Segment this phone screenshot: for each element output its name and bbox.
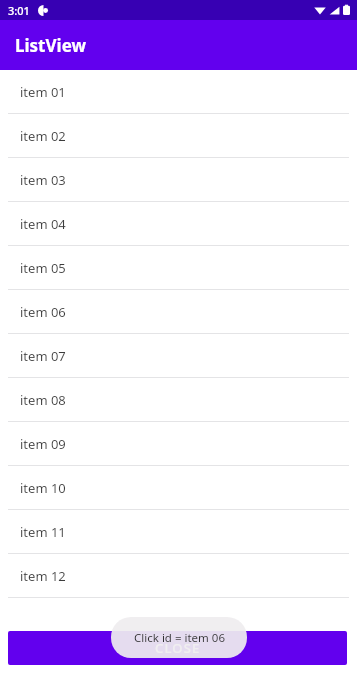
button[interactable]: item 05	[0, 246, 357, 290]
button[interactable]: item 09	[0, 422, 357, 466]
staticText: CLOSE	[155, 639, 201, 657]
staticText: item 12	[20, 567, 66, 585]
button[interactable]: item 08	[0, 378, 357, 422]
button[interactable]: item 11	[0, 510, 357, 554]
staticText: item 01	[20, 83, 66, 101]
staticText: item 04	[20, 215, 66, 233]
button[interactable]: item 10	[0, 466, 357, 510]
staticText: item 05	[20, 259, 66, 277]
staticText: 3:01	[8, 3, 30, 18]
staticText: ListView	[15, 34, 86, 57]
button[interactable]: item 06	[0, 290, 357, 334]
staticText: item 02	[20, 127, 66, 145]
button[interactable]: item 12	[0, 554, 357, 598]
staticText: item 10	[20, 479, 66, 497]
staticText: item 08	[20, 391, 66, 409]
staticText: Click id = item 06	[134, 630, 225, 646]
button[interactable]: item 03	[0, 158, 357, 202]
button[interactable]: item 01	[0, 70, 357, 114]
button[interactable]: item 04	[0, 202, 357, 246]
button[interactable]: item 02	[0, 114, 357, 158]
staticText: item 07	[20, 347, 66, 365]
button[interactable]: item 07	[0, 334, 357, 378]
staticText: item 09	[20, 435, 66, 453]
staticText: item 11	[20, 523, 66, 541]
button[interactable]: CLOSE	[8, 631, 347, 665]
staticText: item 03	[20, 171, 66, 189]
staticText: item 06	[20, 303, 66, 321]
